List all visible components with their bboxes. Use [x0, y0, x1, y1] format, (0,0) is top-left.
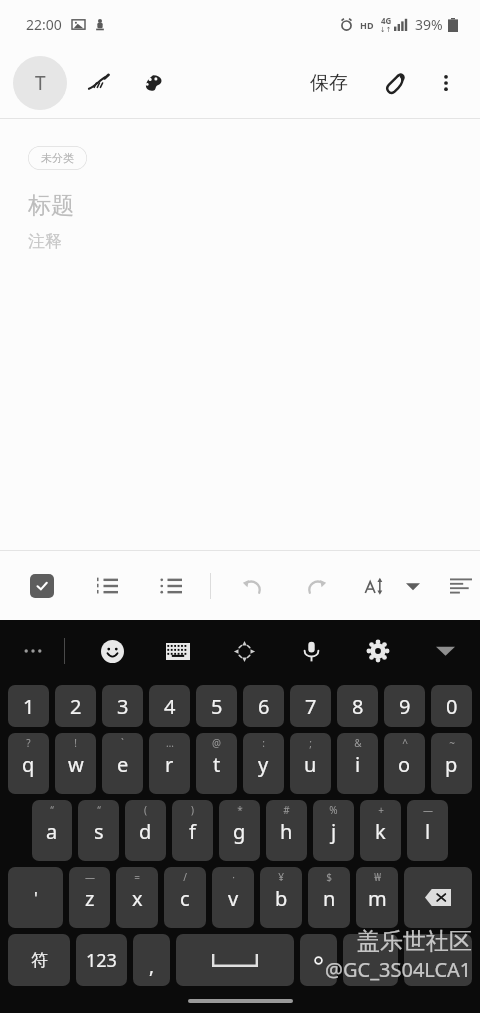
button[interactable]: ^ [384, 733, 425, 794]
button[interactable]: Attach [374, 61, 418, 105]
button[interactable]: Backspace [404, 867, 472, 928]
button[interactable]: Redo [297, 566, 337, 606]
staticText: q [22, 751, 35, 778]
staticText: 未分类 [41, 151, 74, 165]
button[interactable]: 123 [76, 934, 127, 986]
staticText: , [149, 953, 155, 979]
button[interactable]: ; [290, 733, 331, 794]
staticText: … [166, 736, 174, 750]
button[interactable]: — [69, 867, 110, 928]
button[interactable]: Alignment [441, 566, 480, 606]
button[interactable]: 1 [8, 685, 49, 727]
button[interactable]: Space [176, 934, 294, 986]
button[interactable]: Undo [232, 566, 272, 606]
staticText: s [94, 818, 104, 845]
staticText: 注释 [28, 231, 62, 252]
button[interactable]: 2 [55, 685, 96, 727]
button[interactable]: Hide keyboard [426, 632, 464, 670]
button[interactable]: # [266, 800, 307, 861]
button[interactable]: Enter [404, 934, 472, 986]
button[interactable]: 3 [102, 685, 143, 727]
button[interactable]: 符 [8, 934, 70, 986]
button[interactable]: ~ [431, 733, 472, 794]
button[interactable]: Emoji [93, 632, 131, 670]
button[interactable]: Settings [359, 632, 397, 670]
button[interactable]: ) [172, 800, 213, 861]
button[interactable]: 6 [243, 685, 284, 727]
button[interactable]: 5 [196, 685, 237, 727]
staticText: v [228, 885, 239, 912]
button[interactable]: / [164, 867, 206, 928]
button[interactable]: … [149, 733, 190, 794]
staticText: ) [191, 803, 194, 817]
button[interactable]: 0 [431, 685, 472, 727]
staticText: / [183, 870, 187, 884]
button[interactable]: 4 [149, 685, 190, 727]
button[interactable]: Palette [129, 59, 177, 107]
staticText: n [323, 885, 336, 912]
button[interactable]: ¥ [260, 867, 302, 928]
button[interactable]: Move keyboard [225, 632, 263, 670]
button[interactable]: 保存 [300, 63, 358, 103]
staticText: o [398, 751, 411, 778]
button[interactable]: 8 [337, 685, 378, 727]
button[interactable]: Checklist [22, 566, 62, 606]
button[interactable]: Font size [355, 566, 395, 606]
button[interactable]: ? [8, 733, 49, 794]
button[interactable]: Handwriting [75, 59, 123, 107]
staticText: ` [121, 736, 124, 750]
staticText: k [375, 818, 386, 845]
button[interactable]: 未分类 [28, 146, 87, 170]
button[interactable]: : [243, 733, 284, 794]
button[interactable]: + [360, 800, 401, 861]
button[interactable]: ! [55, 733, 96, 794]
staticText: 0 [446, 693, 458, 720]
button[interactable]: Bulleted list [151, 566, 191, 606]
button[interactable]: = [116, 867, 158, 928]
staticText: m [368, 885, 387, 912]
button[interactable]: $ [308, 867, 350, 928]
button[interactable]: Voice input [292, 632, 330, 670]
button[interactable]: Font size dropdown [397, 570, 429, 602]
button[interactable]: · [212, 867, 254, 928]
button[interactable]: — [407, 800, 448, 861]
staticText: + [378, 803, 384, 817]
button[interactable]: * [219, 800, 260, 861]
button[interactable]: Numbered list [87, 566, 127, 606]
button[interactable]: @ [196, 733, 237, 794]
staticText: b [275, 885, 288, 912]
button[interactable]: Language [343, 934, 398, 986]
button[interactable]: , [133, 934, 170, 986]
button[interactable]: ( [125, 800, 166, 861]
button[interactable]: 9 [384, 685, 425, 727]
staticText: ↓↑ [380, 26, 392, 34]
button[interactable]: ₩ [356, 867, 398, 928]
staticText: a [46, 818, 58, 845]
button[interactable]: Period [300, 934, 337, 986]
button[interactable]: % [313, 800, 354, 861]
button[interactable]: ` [102, 733, 143, 794]
staticText: 1 [23, 693, 35, 720]
staticText: : [262, 736, 265, 750]
button[interactable]: More [16, 634, 50, 668]
staticText: ? [26, 736, 31, 750]
button[interactable]: Keyboard layout [159, 632, 197, 670]
staticText: & [354, 736, 362, 750]
staticText: = [134, 870, 140, 884]
staticText: 7 [305, 693, 317, 720]
button[interactable]: “ [78, 800, 119, 861]
button[interactable]: & [337, 733, 378, 794]
button[interactable]: More options [424, 61, 468, 105]
staticText: 6 [258, 693, 270, 720]
staticText: 123 [86, 948, 117, 973]
staticText: 39% [415, 15, 443, 34]
button[interactable]: ' [8, 867, 63, 928]
staticText: c [180, 885, 190, 912]
button[interactable]: Text mode [13, 56, 67, 110]
staticText: “ [50, 803, 54, 817]
staticText: l [425, 818, 431, 845]
staticText: i [355, 751, 361, 778]
staticText: 保存 [310, 71, 348, 95]
button[interactable]: 7 [290, 685, 331, 727]
button[interactable]: “ [32, 800, 72, 861]
